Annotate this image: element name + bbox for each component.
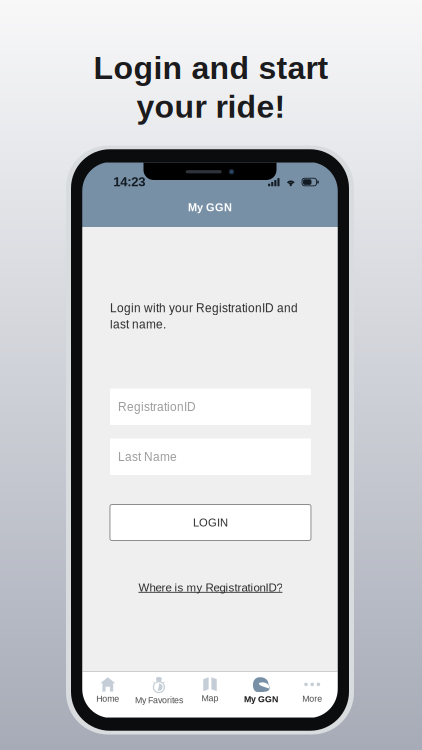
button[interactable]: Home: [82, 677, 133, 707]
staticText: My GGN: [188, 201, 232, 214]
staticText: Where is my RegistrationID?: [138, 581, 282, 594]
staticText: LOGIN: [193, 516, 228, 529]
button[interactable]: Where is my RegistrationID?: [110, 578, 311, 596]
staticText: My Favorites: [135, 695, 183, 705]
button[interactable]: More: [287, 677, 338, 707]
staticText: RegistrationID: [118, 400, 196, 413]
button[interactable]: My GGN: [236, 677, 287, 707]
button[interactable]: Map: [184, 677, 235, 707]
staticText: More: [302, 694, 322, 704]
button[interactable]: My Favorites: [133, 677, 184, 707]
staticText: Map: [201, 693, 218, 703]
staticText: Home: [96, 694, 119, 704]
staticText: your ride!: [136, 89, 285, 125]
staticText: Login and start: [93, 50, 328, 86]
staticText: Login with your RegistrationID and: [110, 301, 298, 315]
staticText: My GGN: [244, 694, 278, 704]
button[interactable]: LOGIN: [110, 504, 311, 540]
staticText: last name.: [110, 318, 166, 331]
staticText: Last Name: [118, 450, 177, 463]
staticText: 14:23: [113, 174, 145, 189]
